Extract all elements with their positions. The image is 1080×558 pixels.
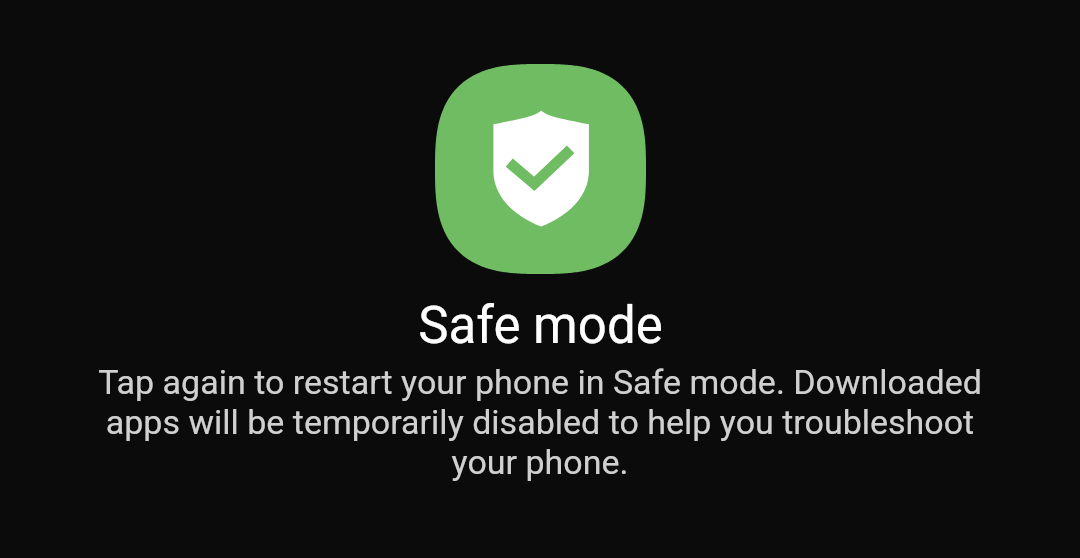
button[interactable]: Safe mode shield icon — [435, 64, 646, 274]
staticText: Safe mode — [418, 297, 663, 355]
staticText: Tap again to restart your phone in Safe … — [0, 362, 1080, 482]
button[interactable]: Tap again to restart in Safe mode — [0, 0, 1080, 558]
